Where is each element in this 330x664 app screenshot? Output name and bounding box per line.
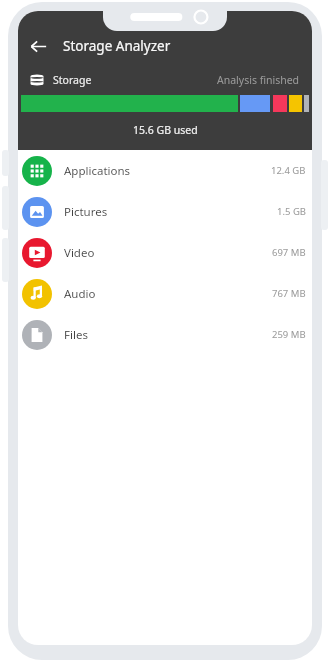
- staticText: Applications: [64, 163, 131, 179]
- staticText: 1.5 GB: [277, 205, 306, 218]
- button[interactable]: Applications: [18, 150, 312, 191]
- button[interactable]: Pictures: [18, 191, 312, 232]
- staticText: Pictures: [64, 204, 108, 220]
- staticText: 697 MB: [272, 246, 306, 259]
- staticText: Files: [64, 327, 88, 343]
- staticText: 12.4 GB: [271, 164, 306, 177]
- staticText: 15.6 GB used: [133, 123, 198, 137]
- button[interactable]: Files: [18, 314, 312, 355]
- staticText: 767 MB: [272, 287, 306, 300]
- staticText: Audio: [64, 286, 96, 302]
- staticText: Storage: [53, 73, 92, 87]
- button[interactable]: Audio: [18, 273, 312, 314]
- staticText: Analysis finished: [217, 73, 300, 87]
- staticText: Video: [64, 245, 95, 261]
- staticText: Storage Analyzer: [63, 37, 171, 55]
- staticText: 259 MB: [272, 328, 306, 341]
- button[interactable]: Back: [21, 29, 55, 63]
- button[interactable]: Video: [18, 232, 312, 273]
